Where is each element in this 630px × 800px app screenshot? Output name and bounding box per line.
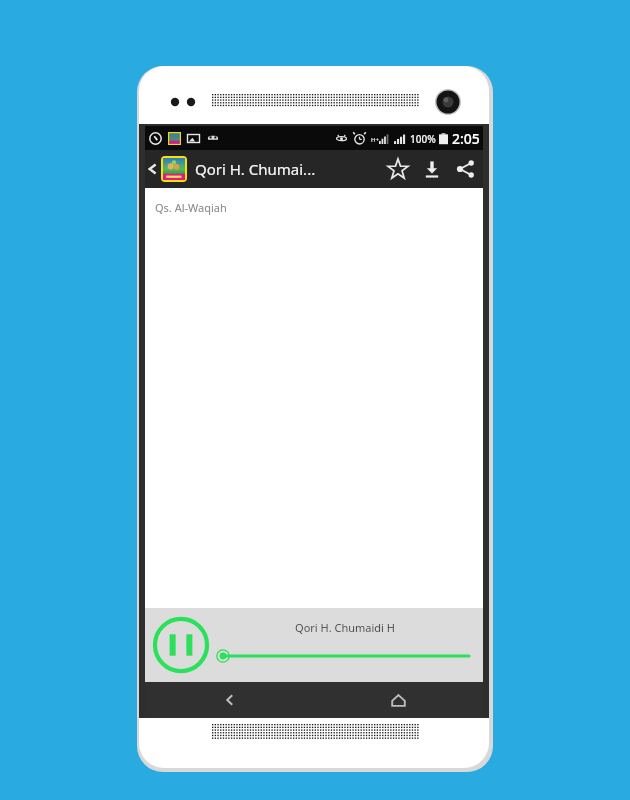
staticText: H+ (371, 136, 379, 144)
button[interactable]: Seek bar (218, 646, 471, 666)
button[interactable]: Back (145, 150, 161, 188)
staticText: Qori H. Chumaidi H (295, 620, 395, 635)
button[interactable]: Favorite (381, 152, 415, 186)
staticText: 100% (410, 132, 436, 146)
staticText: 2:05 (452, 129, 480, 148)
button[interactable]: Download (415, 152, 449, 186)
staticText: Qs. Al-Waqiah (155, 200, 227, 215)
staticText: Qori H. Chumai... (195, 159, 316, 179)
button[interactable]: Home (314, 682, 483, 718)
button[interactable]: Back (145, 682, 314, 718)
button[interactable]: App icon (161, 156, 187, 182)
button[interactable]: Share (449, 152, 483, 186)
button[interactable]: Pause (150, 614, 212, 676)
